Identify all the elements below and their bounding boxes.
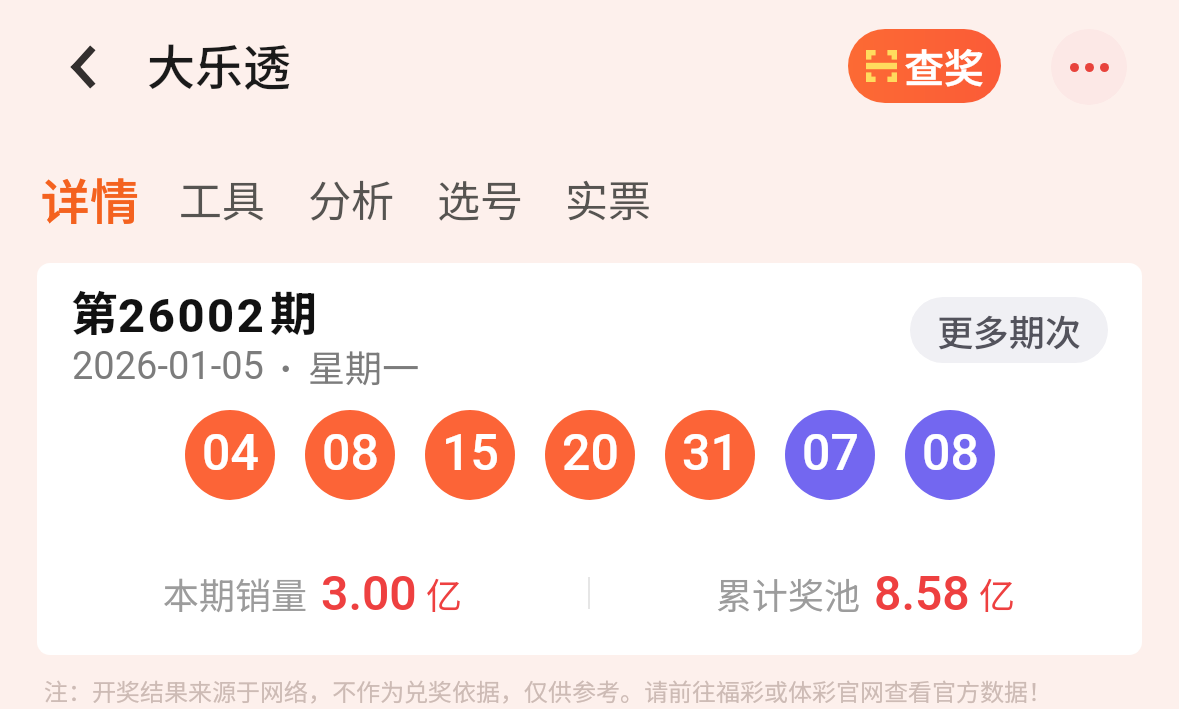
- button[interactable]: 工具: [179, 162, 265, 234]
- staticText: 实票: [565, 167, 651, 229]
- staticText: 更多期次: [937, 304, 1082, 356]
- staticText: 08: [922, 424, 979, 483]
- button[interactable]: 查奖: [848, 29, 1001, 103]
- staticText: 工具: [179, 167, 265, 229]
- staticText: 04: [202, 424, 259, 483]
- staticText: 累计奖池: [716, 567, 861, 619]
- staticText: 20: [562, 424, 619, 483]
- staticText: 注：开奖结果来源于网络，不作为兑奖依据，仅供参考。请前往福彩或体彩官网查看官方数…: [44, 673, 1052, 708]
- button[interactable]: More options: [1051, 29, 1127, 105]
- staticText: 大乐透: [147, 29, 292, 99]
- staticText: 26002: [118, 288, 267, 343]
- staticText: 8.58: [874, 565, 970, 621]
- staticText: 详情: [41, 163, 140, 234]
- staticText: ·: [264, 345, 308, 388]
- staticText: 亿: [979, 567, 1016, 619]
- staticText: 查奖: [904, 37, 984, 95]
- staticText: 08: [322, 424, 379, 483]
- staticText: 2026-01-05: [72, 344, 264, 389]
- staticText: 星期一: [308, 339, 419, 393]
- staticText: 分析: [308, 167, 394, 229]
- button[interactable]: Back: [41, 25, 125, 109]
- staticText: 本期销量: [163, 567, 308, 619]
- button[interactable]: 实票: [565, 162, 651, 234]
- button[interactable]: 分析: [308, 162, 394, 234]
- button[interactable]: 选号: [437, 162, 523, 234]
- staticText: 选号: [437, 167, 523, 229]
- staticText: 期: [270, 276, 317, 344]
- staticText: 亿: [426, 567, 463, 619]
- staticText: 31: [682, 424, 739, 483]
- button[interactable]: 详情: [41, 162, 140, 234]
- staticText: 07: [802, 424, 859, 483]
- staticText: 15: [442, 424, 499, 483]
- staticText: 3.00: [321, 565, 417, 621]
- staticText: 第: [71, 276, 118, 344]
- button[interactable]: 更多期次: [910, 297, 1108, 363]
